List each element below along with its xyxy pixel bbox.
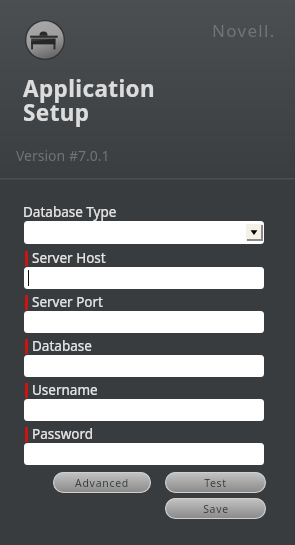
- button[interactable]: Advanced: [53, 472, 151, 493]
- button[interactable]: Server Host: [25, 251, 106, 266]
- staticText: Save: [203, 502, 229, 516]
- staticText: Password: [32, 425, 94, 440]
- button[interactable]: [24, 355, 264, 377]
- button[interactable]: [24, 311, 264, 333]
- staticText: Application Setup: [23, 73, 156, 127]
- button[interactable]: Database type dropdown: [24, 221, 264, 244]
- staticText: Username: [32, 381, 98, 396]
- staticText: Database Type: [23, 203, 117, 221]
- button[interactable]: [24, 399, 264, 421]
- button[interactable]: Server Port: [25, 295, 103, 310]
- staticText: Test: [204, 476, 227, 490]
- button[interactable]: Save: [165, 498, 266, 519]
- staticText: Database: [32, 337, 92, 352]
- button[interactable]: Test: [165, 472, 266, 493]
- staticText: Version #7.0.1: [16, 146, 110, 165]
- button[interactable]: [24, 443, 264, 465]
- button[interactable]: Application icon: [25, 20, 65, 60]
- button[interactable]: Password: [25, 427, 94, 442]
- button[interactable]: Database: [25, 339, 92, 354]
- staticText: Server Port: [32, 293, 103, 308]
- staticText: Server Host: [32, 249, 106, 264]
- staticText: Novell.: [212, 19, 276, 42]
- staticText: Advanced: [75, 476, 129, 490]
- button[interactable]: [24, 267, 264, 289]
- button[interactable]: Username: [25, 383, 98, 398]
